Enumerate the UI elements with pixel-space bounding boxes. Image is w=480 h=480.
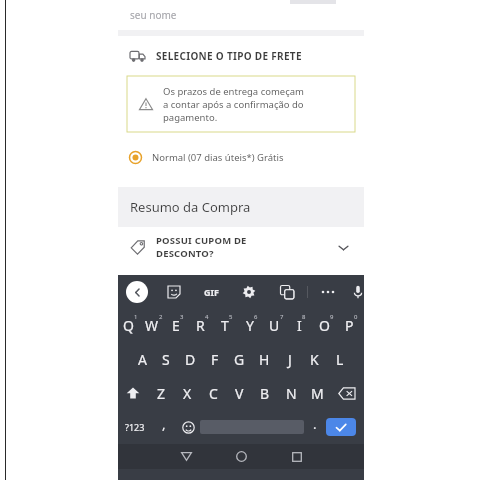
button[interactable]: . xyxy=(304,410,326,444)
button[interactable]: Normal (07 dias úteis*) Grátis xyxy=(118,146,364,168)
staticText: 1 xyxy=(134,313,138,321)
staticText: Normal (07 dias úteis*) Grátis xyxy=(152,151,284,164)
staticText: H xyxy=(259,350,270,369)
button[interactable]: L xyxy=(327,342,352,376)
button[interactable]: GIF xyxy=(204,286,219,298)
staticText: F xyxy=(211,350,219,369)
button[interactable]: Shift xyxy=(118,376,148,410)
staticText: D xyxy=(185,350,196,369)
staticText: . xyxy=(313,415,317,433)
button[interactable]: Voltar xyxy=(158,444,214,469)
staticText: Y xyxy=(246,316,254,335)
button[interactable]: T xyxy=(214,308,239,342)
staticText: I xyxy=(297,316,302,335)
staticText: S xyxy=(162,350,170,369)
staticText: Z xyxy=(157,384,166,403)
button[interactable]: N xyxy=(278,376,304,410)
staticText: 9 xyxy=(330,313,334,321)
staticText: POSSUI CUPOM DE xyxy=(156,234,247,247)
staticText: 4 xyxy=(205,313,209,321)
button[interactable]: Adesivos xyxy=(166,284,182,300)
button[interactable]: , xyxy=(152,410,176,444)
staticText: N xyxy=(286,384,297,403)
staticText: Resumo da Compra xyxy=(130,198,251,216)
button[interactable]: Enter xyxy=(326,418,356,436)
staticText: G xyxy=(234,350,245,369)
staticText: GIF xyxy=(204,286,219,298)
button[interactable]: B xyxy=(252,376,278,410)
button[interactable]: S xyxy=(154,342,178,376)
button[interactable]: A xyxy=(130,342,154,376)
staticText: 6 xyxy=(254,313,258,321)
staticText: SELECIONE O TIPO DE FRETE xyxy=(156,49,302,63)
button[interactable]: Fechar barra xyxy=(126,281,148,303)
staticText: 7 xyxy=(280,313,284,321)
button[interactable]: C xyxy=(200,376,226,410)
button[interactable]: SELECIONE O TIPO DE FRETE xyxy=(118,44,364,68)
staticText: Os prazos de entrega começam xyxy=(163,85,304,98)
button[interactable]: Z xyxy=(148,376,174,410)
staticText: P xyxy=(345,316,354,335)
staticText: X xyxy=(183,384,192,403)
staticText: 2 xyxy=(159,313,163,321)
button[interactable]: K xyxy=(302,342,327,376)
button[interactable]: D xyxy=(178,342,202,376)
button[interactable]: I xyxy=(289,308,314,342)
button[interactable]: Emoji xyxy=(176,410,200,444)
staticText: Q xyxy=(123,316,134,335)
staticText: a contar após a confirmação do xyxy=(163,98,304,111)
staticText: 5 xyxy=(229,313,233,321)
staticText: O xyxy=(319,316,330,335)
button[interactable]: F xyxy=(202,342,227,376)
button[interactable]: J xyxy=(277,342,302,376)
button[interactable]: M xyxy=(304,376,330,410)
staticText: E xyxy=(172,316,180,335)
button[interactable]: Configurações xyxy=(241,284,257,300)
staticText: , xyxy=(162,415,166,433)
button[interactable]: Q xyxy=(118,308,142,342)
staticText: C xyxy=(209,384,218,403)
button[interactable]: Traduzir xyxy=(279,284,295,300)
staticText: L xyxy=(336,350,344,369)
button[interactable]: O xyxy=(314,308,339,342)
staticText: DESCONTO? xyxy=(156,247,214,260)
button[interactable]: G xyxy=(227,342,252,376)
other: Expandir cupom xyxy=(337,241,350,254)
button[interactable]: W xyxy=(142,308,166,342)
staticText: pagamento. xyxy=(163,111,218,124)
button[interactable]: V xyxy=(226,376,252,410)
staticText: T xyxy=(221,316,229,335)
staticText: 3 xyxy=(180,313,184,321)
staticText: K xyxy=(310,350,319,369)
staticText: W xyxy=(145,316,159,335)
button[interactable]: Início xyxy=(214,444,269,469)
button[interactable]: Mais opções xyxy=(320,284,336,300)
button[interactable]: X xyxy=(174,376,200,410)
button[interactable]: Entrada por voz xyxy=(352,283,364,301)
staticText: B xyxy=(260,384,270,403)
button[interactable]: Y xyxy=(239,308,264,342)
staticText: seu nome xyxy=(130,8,177,22)
staticText: ?123 xyxy=(125,421,145,433)
button[interactable]: U xyxy=(264,308,289,342)
button[interactable]: Apagar xyxy=(330,376,364,410)
staticText: U xyxy=(269,316,280,335)
staticText: V xyxy=(235,384,244,403)
staticText: 0 xyxy=(354,313,358,321)
button[interactable]: P xyxy=(339,308,364,342)
button[interactable]: R xyxy=(190,308,214,342)
button[interactable]: H xyxy=(252,342,277,376)
button[interactable]: POSSUI CUPOM DE xyxy=(118,227,364,267)
button[interactable]: Recentes xyxy=(269,444,324,469)
staticText: M xyxy=(311,384,324,403)
button[interactable]: ?123 xyxy=(118,410,152,444)
staticText: J xyxy=(288,350,292,369)
button[interactable]: E xyxy=(166,308,190,342)
staticText: A xyxy=(138,350,147,369)
staticText: 8 xyxy=(302,313,306,321)
staticText: R xyxy=(196,316,205,335)
